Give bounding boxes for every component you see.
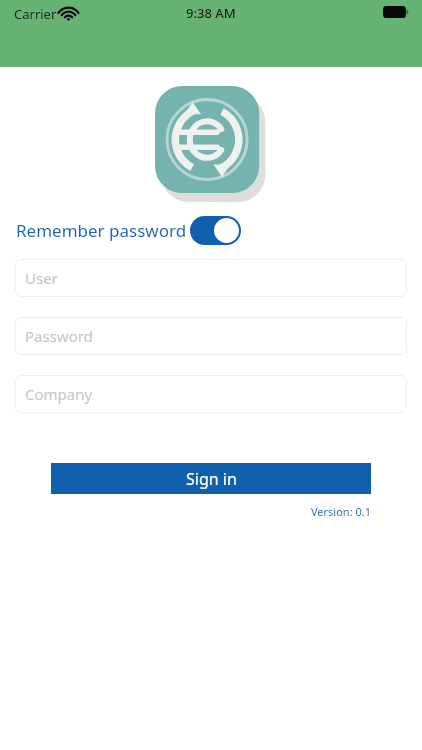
button[interactable]: Password — [15, 317, 407, 355]
staticText: Carrier — [14, 5, 57, 23]
staticText: 9:38 AM — [186, 4, 236, 22]
staticText: User — [25, 268, 58, 288]
staticText: Remember password — [16, 219, 187, 242]
staticText: Password — [25, 326, 93, 346]
staticText: Sign in — [186, 468, 237, 490]
staticText: Company — [25, 384, 93, 404]
staticText: Version: 0.1 — [0, 504, 371, 519]
button[interactable]: Company — [15, 375, 407, 413]
button[interactable]: User — [15, 259, 407, 297]
button[interactable]: Remember password — [16, 213, 422, 247]
button[interactable]: Sign in — [51, 463, 371, 494]
button[interactable]: Remember password toggle — [190, 216, 241, 245]
